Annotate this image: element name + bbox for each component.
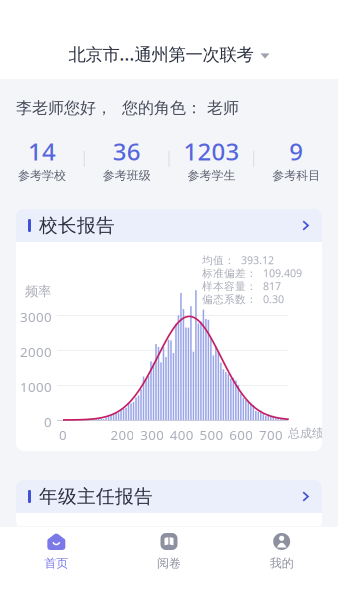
button[interactable]: 校长报告	[16, 209, 322, 242]
staticText: 李老师您好， 您的角色： 老师	[16, 98, 239, 118]
staticText: 年级主任报告	[39, 485, 153, 508]
staticText: 700	[259, 426, 283, 444]
staticText: 参考科目	[272, 168, 320, 183]
staticText: 均值： 393.12	[202, 253, 274, 267]
staticText: 2000	[20, 343, 52, 361]
staticText: 样本容量： 817	[202, 279, 281, 293]
staticText: 600	[229, 426, 253, 444]
staticText: 标准偏差： 109.409	[202, 266, 302, 280]
staticText: 3000	[20, 308, 52, 326]
button[interactable]: 我的	[225, 533, 338, 581]
staticText: 500	[199, 426, 223, 444]
staticText: 0	[59, 426, 67, 444]
staticText: 0	[44, 413, 52, 431]
staticText: 阅卷	[157, 556, 181, 571]
staticText: 参考学生	[187, 168, 235, 183]
staticText: 我的	[270, 556, 294, 571]
staticText: 参考学校	[18, 168, 66, 183]
button[interactable]: 北京市...通州第一次联考	[0, 39, 338, 69]
button[interactable]: 首页	[0, 533, 113, 581]
staticText: 总成绩	[288, 426, 324, 441]
staticText: 偏态系数： 0.30	[202, 292, 284, 306]
staticText: 北京市...通州第一次联考	[68, 42, 253, 65]
staticText: 1000	[20, 378, 52, 396]
staticText: 9	[289, 135, 303, 167]
staticText: 300	[140, 426, 164, 444]
button[interactable]: 阅卷	[113, 533, 225, 581]
staticText: 参考班级	[103, 168, 151, 183]
staticText: 校长报告	[39, 214, 115, 237]
staticText: 14	[28, 135, 56, 167]
staticText: 首页	[44, 556, 68, 571]
staticText: 400	[170, 426, 194, 444]
staticText: 频率	[25, 283, 51, 299]
staticText: 200	[110, 426, 134, 444]
staticText: 1203	[183, 135, 239, 167]
staticText: 36	[113, 135, 141, 167]
button[interactable]: 年级主任报告	[16, 480, 322, 513]
